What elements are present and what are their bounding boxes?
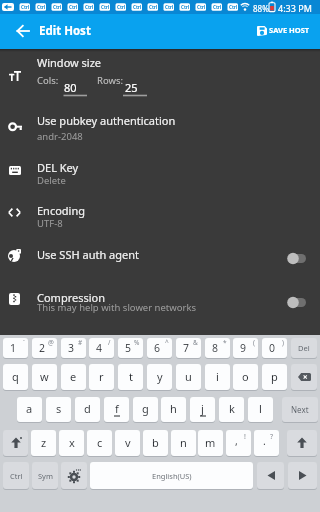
staticText: Next: [291, 404, 309, 415]
staticText: 4: [96, 341, 103, 355]
button[interactable]: e: [61, 364, 86, 390]
button[interactable]: 2: [32, 338, 57, 358]
button[interactable]: s: [46, 397, 71, 422]
staticText: q: [12, 369, 19, 384]
staticText: ^: [165, 338, 169, 347]
staticText: d: [84, 401, 91, 416]
staticText: j: [201, 401, 204, 416]
staticText: Ctrl: [53, 4, 62, 10]
staticText: f: [115, 401, 119, 416]
button[interactable]: Use SSH auth agent: [0, 238, 320, 278]
button[interactable]: Use pubkey authentication: [0, 107, 320, 147]
button[interactable]: [3, 430, 28, 456]
staticText: Ctrl: [149, 4, 158, 10]
staticText: %: [134, 338, 140, 347]
staticText: s: [56, 401, 62, 416]
staticText: h: [170, 401, 177, 416]
staticText: a: [26, 401, 33, 416]
button[interactable]: [257, 462, 284, 489]
button[interactable]: SAVE HOST: [250, 18, 316, 45]
staticText: `: [23, 338, 25, 347]
button[interactable]: j: [190, 397, 215, 422]
button[interactable]: [287, 296, 307, 309]
button[interactable]: t: [118, 364, 143, 390]
button[interactable]: [288, 462, 317, 489]
staticText: Ctrl: [10, 471, 23, 481]
staticText: o: [242, 369, 249, 384]
button[interactable]: r: [89, 364, 114, 390]
button[interactable]: 1: [3, 338, 28, 358]
button[interactable]: Next: [282, 397, 318, 422]
button[interactable]: [291, 364, 317, 390]
button[interactable]: q: [3, 364, 28, 390]
button[interactable]: z: [31, 430, 56, 456]
staticText: t: [129, 369, 133, 384]
button[interactable]: [8, 16, 38, 46]
button[interactable]: u: [176, 364, 201, 390]
button[interactable]: English(US): [90, 462, 253, 489]
staticText: Del: [298, 343, 310, 353]
button[interactable]: k: [219, 397, 244, 422]
staticText: m: [205, 435, 216, 450]
staticText: Window size: [37, 55, 102, 70]
staticText: SAVE HOST: [269, 25, 310, 35]
button[interactable]: o: [233, 364, 258, 390]
button[interactable]: Del: [291, 338, 317, 358]
button[interactable]: a: [17, 397, 42, 422]
button[interactable]: b: [143, 430, 168, 456]
button[interactable]: v: [115, 430, 140, 456]
button[interactable]: [287, 252, 307, 265]
button[interactable]: n: [171, 430, 196, 456]
button[interactable]: ,: [226, 430, 251, 456]
button[interactable]: Compression: [0, 282, 320, 322]
button[interactable]: Sym: [32, 462, 58, 489]
button[interactable]: f: [104, 397, 129, 422]
button[interactable]: w: [32, 364, 57, 390]
button[interactable]: 9: [233, 338, 258, 358]
button[interactable]: Window size: [0, 52, 320, 102]
staticText: #: [78, 338, 83, 347]
staticText: Use pubkey authentication: [37, 113, 176, 128]
button[interactable]: 0: [262, 338, 287, 358]
button[interactable]: m: [198, 430, 223, 456]
staticText: p: [271, 369, 278, 384]
button[interactable]: l: [248, 397, 273, 422]
button[interactable]: DEL Key: [0, 152, 320, 192]
staticText: 4:33 PM: [278, 2, 312, 14]
button[interactable]: [61, 462, 87, 489]
button[interactable]: x: [59, 430, 84, 456]
staticText: Ctrl: [133, 4, 142, 10]
button[interactable]: 5: [118, 338, 143, 358]
button[interactable]: d: [75, 397, 100, 422]
staticText: Ctrl: [69, 4, 78, 10]
staticText: z: [41, 435, 47, 450]
button[interactable]: 4: [89, 338, 114, 358]
staticText: 7: [183, 341, 190, 355]
staticText: 3: [68, 341, 75, 355]
button[interactable]: h: [161, 397, 186, 422]
staticText: k: [229, 401, 235, 416]
staticText: 88%: [253, 3, 269, 14]
button[interactable]: p: [262, 364, 287, 390]
staticText: &: [193, 338, 198, 347]
button[interactable]: g: [133, 397, 158, 422]
staticText: x: [69, 435, 75, 450]
button[interactable]: 3: [61, 338, 86, 358]
button[interactable]: i: [205, 364, 230, 390]
button[interactable]: 6: [147, 338, 172, 358]
button[interactable]: [287, 430, 317, 456]
button[interactable]: 8: [205, 338, 230, 358]
staticText: Encoding: [37, 203, 86, 218]
button[interactable]: c: [87, 430, 112, 456]
button[interactable]: y: [147, 364, 172, 390]
button[interactable]: Ctrl: [3, 462, 29, 489]
staticText: Edit Host: [39, 23, 91, 39]
staticText: l: [259, 401, 262, 416]
staticText: Ctrl: [213, 4, 222, 10]
staticText: Use SSH auth agent: [37, 247, 139, 262]
staticText: 6: [154, 341, 161, 355]
staticText: 0: [269, 341, 276, 355]
button[interactable]: Encoding: [0, 195, 320, 235]
button[interactable]: 7: [176, 338, 201, 358]
button[interactable]: .: [254, 430, 279, 456]
